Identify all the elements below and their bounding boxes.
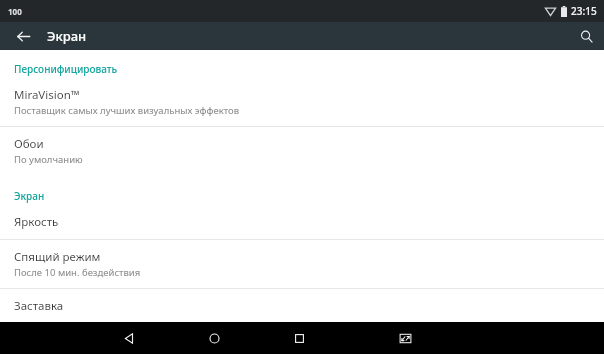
button[interactable]: MiraVision™: [0, 78, 604, 126]
button[interactable]: Recent apps: [284, 323, 314, 353]
button[interactable]: Back: [114, 323, 144, 353]
button[interactable]: Спящий режим: [0, 240, 604, 288]
button[interactable]: Home: [199, 323, 229, 353]
staticText: 23:15: [571, 4, 597, 18]
staticText: Экран: [47, 27, 87, 45]
staticText: Персонифицировать: [14, 62, 604, 76]
staticText: По умолчанию: [14, 153, 83, 166]
staticText: После 10 мин. бездействия: [14, 266, 141, 279]
button[interactable]: Заставка: [0, 289, 604, 322]
button[interactable]: Back: [10, 23, 36, 49]
staticText: Яркость: [14, 214, 59, 230]
staticText: Поставщик самых лучших визуальных эффект…: [14, 104, 240, 117]
staticText: Заставка: [14, 298, 64, 313]
button[interactable]: Яркость: [0, 205, 604, 239]
staticText: MiraVision™: [14, 87, 80, 103]
button[interactable]: Обои: [0, 127, 604, 175]
staticText: Спящий режим: [14, 249, 101, 265]
staticText: Экран: [14, 189, 604, 203]
staticText: 100: [8, 6, 22, 17]
button[interactable]: Screenshot: [390, 323, 420, 353]
staticText: Обои: [14, 136, 44, 152]
button[interactable]: Search: [573, 23, 599, 49]
